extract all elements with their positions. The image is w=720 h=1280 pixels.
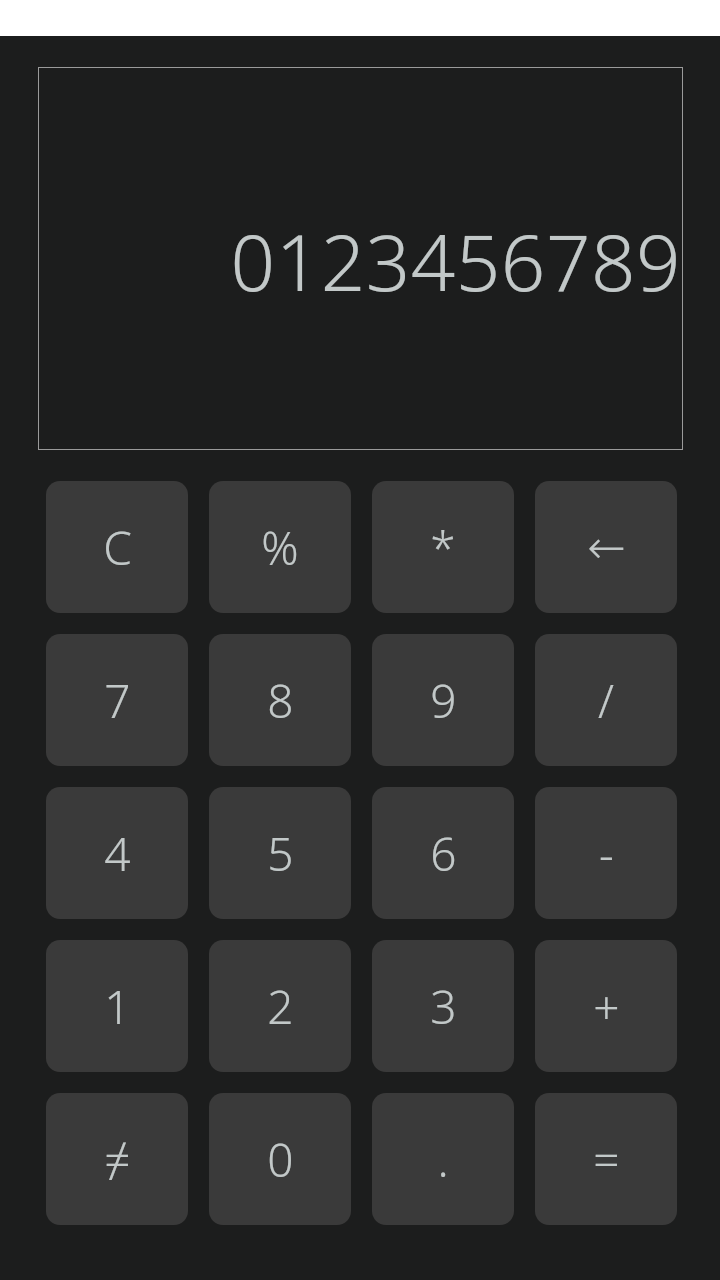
staticText: ≠: [104, 1128, 131, 1191]
button[interactable]: 7: [46, 634, 188, 766]
button[interactable]: =: [535, 1093, 677, 1225]
button[interactable]: +: [535, 940, 677, 1072]
staticText: =: [593, 1128, 620, 1191]
staticText: *: [430, 516, 456, 579]
button[interactable]: 6: [372, 787, 514, 919]
button[interactable]: /: [535, 634, 677, 766]
button[interactable]: Backspace: [535, 481, 677, 613]
staticText: 8: [267, 669, 294, 732]
button[interactable]: 9: [372, 634, 514, 766]
staticText: /: [598, 669, 614, 732]
staticText: 9: [430, 669, 457, 732]
staticText: 5: [267, 822, 294, 885]
staticText: 4: [104, 822, 131, 885]
staticText: +: [593, 975, 620, 1038]
button[interactable]: *: [372, 481, 514, 613]
button[interactable]: %: [209, 481, 351, 613]
staticText: %: [261, 516, 299, 579]
staticText: 1: [104, 975, 131, 1038]
staticText: -: [599, 822, 614, 885]
button[interactable]: 5: [209, 787, 351, 919]
button[interactable]: .: [372, 1093, 514, 1225]
button[interactable]: -: [535, 787, 677, 919]
staticText: 7: [104, 669, 131, 732]
staticText: ←: [587, 520, 626, 574]
staticText: 3: [430, 975, 457, 1038]
staticText: 0123456789: [38, 208, 681, 314]
staticText: C: [103, 516, 132, 579]
button[interactable]: 1: [46, 940, 188, 1072]
button[interactable]: 2: [209, 940, 351, 1072]
staticText: 6: [430, 822, 457, 885]
button[interactable]: C: [46, 481, 188, 613]
staticText: .: [437, 1128, 449, 1191]
button[interactable]: 4: [46, 787, 188, 919]
staticText: 0: [267, 1128, 294, 1191]
button[interactable]: 3: [372, 940, 514, 1072]
button[interactable]: 8: [209, 634, 351, 766]
button[interactable]: 0: [209, 1093, 351, 1225]
button[interactable]: Not equal: [46, 1093, 188, 1225]
staticText: 2: [267, 975, 294, 1038]
